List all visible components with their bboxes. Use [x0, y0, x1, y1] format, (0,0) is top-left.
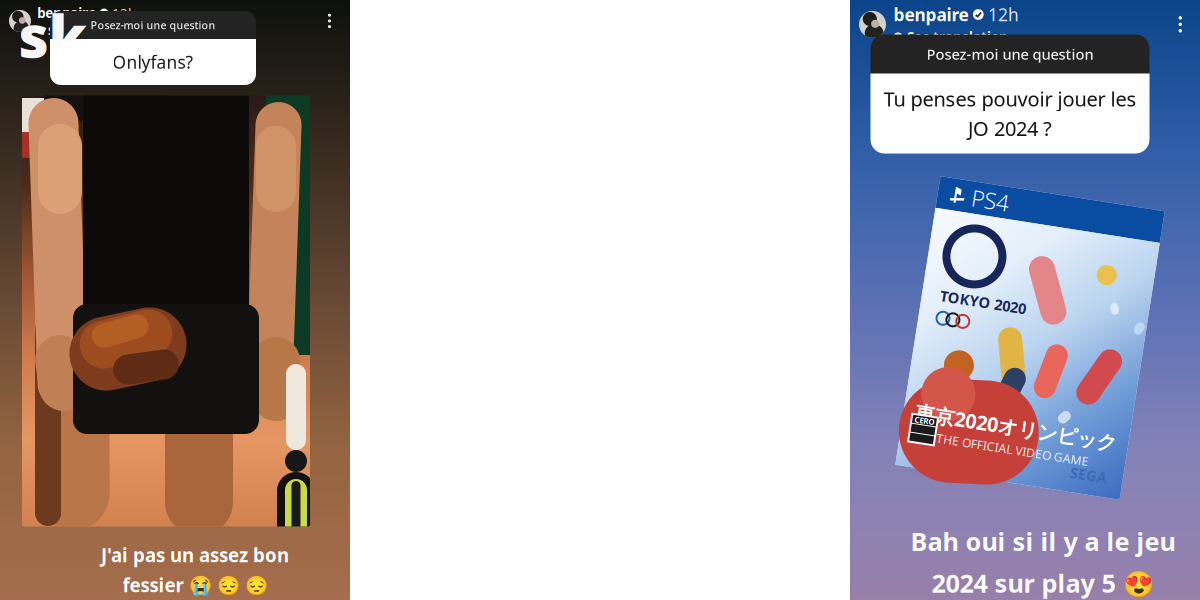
staticText: 東京2020オリンピック: [928, 415, 1132, 442]
staticText: SEGA: [1090, 454, 1127, 474]
staticText: sk: [18, 0, 87, 74]
staticText: 12h: [112, 4, 136, 22]
button[interactable]: More options: [1169, 10, 1192, 38]
staticText: Posez-moi une question: [90, 18, 215, 32]
staticText: 12h: [988, 3, 1019, 26]
staticText: J'ai pas un assez bon: [101, 543, 289, 567]
staticText: Bah oui si il y a le jeu: [910, 524, 1175, 558]
staticText: fessier 😭 😔 😔: [122, 572, 267, 597]
staticText: CERO: [928, 431, 948, 441]
staticText: 2024 sur play 5 😍: [931, 566, 1154, 600]
staticText: benpaire: [894, 3, 969, 26]
staticText: JO 2024 ?: [968, 115, 1052, 142]
staticText: Tu penses pouvoir jouer les: [883, 85, 1136, 112]
staticText: PS4: [950, 193, 988, 223]
staticText: See translation: [907, 28, 1008, 46]
staticText: Posez-moi une question: [926, 44, 1093, 64]
staticText: benpaire: [37, 4, 96, 22]
staticText: TOKYO 2020: [934, 300, 1021, 319]
staticText: See translation: [48, 24, 128, 38]
staticText: THE OFFICIAL VIDEO GAME: [953, 443, 1107, 459]
button[interactable]: More options: [321, 9, 338, 33]
staticText: Onlyfans?: [112, 50, 193, 73]
